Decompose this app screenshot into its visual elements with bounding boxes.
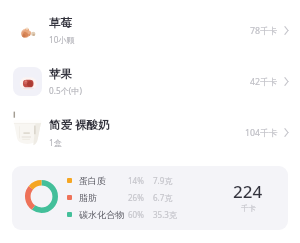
staticText: 7.9克 <box>153 175 173 186</box>
staticText: 脂肪 <box>79 192 128 203</box>
button[interactable]: 苹果 <box>0 56 300 107</box>
button[interactable]: 蛋白质 <box>12 166 288 230</box>
staticText: 26% <box>128 192 153 203</box>
button[interactable]: 简爱 裸酸奶 <box>0 107 300 158</box>
staticText: 0.5个(中) <box>49 85 82 96</box>
other: View details <box>284 26 289 35</box>
staticText: 42千卡 <box>250 76 278 88</box>
staticText: 草莓 <box>49 16 72 30</box>
button[interactable]: 脂肪 <box>67 189 173 206</box>
staticText: 碳水化合物 <box>79 209 128 220</box>
button[interactable]: 草莓 <box>0 5 300 56</box>
staticText: 78千卡 <box>250 25 278 37</box>
staticText: 104千卡 <box>245 127 278 139</box>
staticText: 224 <box>233 180 263 203</box>
staticText: 6.7克 <box>153 192 173 203</box>
button[interactable]: 碳水化合物 <box>67 206 177 223</box>
button[interactable]: 蛋白质 <box>67 172 173 189</box>
staticText: 60% <box>128 209 153 220</box>
other: View details <box>284 77 289 86</box>
other: View details <box>284 128 289 137</box>
staticText: 千卡 <box>241 204 256 213</box>
staticText: 1盒 <box>49 137 62 148</box>
staticText: 简爱 裸酸奶 <box>49 117 110 133</box>
staticText: 苹果 <box>49 67 72 81</box>
staticText: 35.3克 <box>153 209 177 220</box>
staticText: 蛋白质 <box>79 175 128 186</box>
staticText: 10小颗 <box>49 34 75 45</box>
staticText: 14% <box>128 175 153 186</box>
